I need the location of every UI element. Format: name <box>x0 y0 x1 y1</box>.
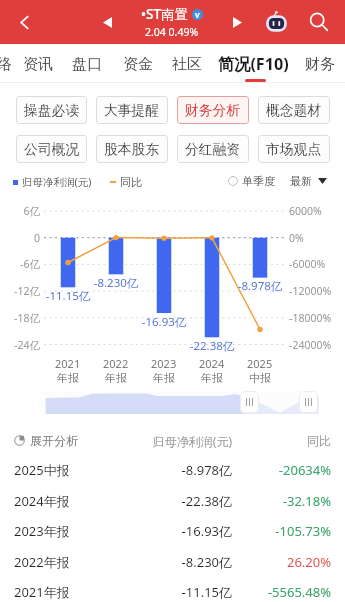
staticText: 财务分析 <box>185 102 241 119</box>
button[interactable]: Range end handle <box>299 391 318 413</box>
button[interactable]: 2024年报 <box>0 489 345 520</box>
staticText: 大事提醒 <box>104 102 160 119</box>
staticText: -22.38亿 <box>182 338 242 354</box>
button[interactable]: 财务 <box>282 44 345 82</box>
staticText: -32.18% <box>231 492 331 510</box>
staticText: 股本股东 <box>104 141 160 158</box>
staticText: 年报 <box>153 371 175 385</box>
staticText: -6000% <box>289 257 345 271</box>
staticText: 分红融资 <box>185 141 241 158</box>
staticText: 年报 <box>105 371 127 385</box>
staticText: 络 <box>0 55 12 74</box>
staticText: 6亿 <box>0 204 40 218</box>
staticText: 2022年报 <box>14 553 70 571</box>
staticText: 2025中报 <box>14 461 70 479</box>
staticText: 归母净利润(元) <box>132 433 232 449</box>
staticText: •ST南置 <box>141 5 189 23</box>
button[interactable]: Previous stock <box>90 0 124 44</box>
button[interactable]: Search <box>304 0 334 44</box>
button[interactable]: 股本股东 <box>96 135 168 163</box>
staticText: 同比 <box>231 433 331 448</box>
staticText: -8.978亿 <box>230 278 290 294</box>
staticText: -8.230亿 <box>132 553 232 571</box>
staticText: 资讯 <box>23 55 53 74</box>
staticText: -12亿 <box>0 284 40 298</box>
button[interactable]: 2025中报 <box>0 458 345 489</box>
staticText: 同比 <box>120 175 142 189</box>
button[interactable]: 2021年报 <box>0 580 345 602</box>
staticText: 2024 <box>199 356 225 371</box>
staticText: -18000% <box>289 311 345 325</box>
staticText: 单季度 <box>242 174 275 188</box>
staticText: 市场观点 <box>266 141 322 158</box>
button[interactable]: 展开分析 <box>14 433 78 448</box>
button[interactable]: 概念题材 <box>258 96 330 124</box>
staticText: v <box>195 9 200 20</box>
staticText: -6亿 <box>0 257 40 271</box>
staticText: -24亿 <box>0 338 40 352</box>
button[interactable]: 资金 <box>100 44 176 82</box>
staticText: 2024年报 <box>14 492 70 510</box>
staticText: 2022 <box>103 356 129 371</box>
staticText: -8.978亿 <box>132 461 232 479</box>
staticText: 26.20% <box>231 553 331 571</box>
staticText: -11.15亿 <box>38 288 98 304</box>
button[interactable]: 财务分析 <box>177 96 249 124</box>
button[interactable]: Range start handle <box>240 391 259 413</box>
button[interactable]: 络 <box>0 44 42 82</box>
button[interactable]: 盘口 <box>49 44 125 82</box>
button[interactable]: Period selector <box>290 174 327 188</box>
staticText: 最新 <box>290 174 312 188</box>
button[interactable]: AI assistant <box>262 0 291 44</box>
button[interactable]: Back <box>6 0 42 44</box>
staticText: -16.93亿 <box>134 314 194 330</box>
staticText: -16.93亿 <box>132 522 232 540</box>
button[interactable]: 2022年报 <box>0 550 345 581</box>
staticText: 年报 <box>201 371 223 385</box>
staticText: 2021 <box>55 356 81 371</box>
staticText: 2.04 0.49% <box>145 25 199 39</box>
staticText: 2023 <box>151 356 177 371</box>
staticText: 归母净利润(元) <box>22 175 92 189</box>
button[interactable]: 社区 <box>149 44 225 82</box>
staticText: -18亿 <box>0 311 40 325</box>
staticText: 0 <box>0 231 40 245</box>
staticText: -5565.48% <box>231 583 331 601</box>
staticText: -24000% <box>289 338 345 352</box>
staticText: 简况(F10) <box>218 53 289 75</box>
staticText: 2021年报 <box>14 583 70 601</box>
staticText: -20634% <box>231 461 331 479</box>
staticText: 2023年报 <box>14 522 70 540</box>
staticText: 资金 <box>123 55 153 74</box>
staticText: -8.230亿 <box>86 275 146 291</box>
button[interactable]: 资讯 <box>0 44 76 82</box>
button[interactable]: 2023年报 <box>0 519 345 550</box>
button[interactable]: 操盘必读 <box>16 96 87 124</box>
button[interactable]: 单季度 <box>228 174 275 188</box>
staticText: 中报 <box>249 371 271 385</box>
staticText: 概念题材 <box>266 102 322 119</box>
staticText: 盘口 <box>72 55 102 74</box>
staticText: 0% <box>289 231 345 245</box>
staticText: -105.73% <box>231 522 331 540</box>
staticText: 年报 <box>57 371 79 385</box>
button[interactable]: 市场观点 <box>258 135 330 163</box>
button[interactable]: 公司概况 <box>16 135 87 163</box>
button[interactable]: 简况(F10) <box>215 44 291 82</box>
staticText: 展开分析 <box>30 433 78 448</box>
staticText: 社区 <box>172 55 202 74</box>
button[interactable]: Next stock <box>220 0 254 44</box>
staticText: -12000% <box>289 284 345 298</box>
staticText: 操盘必读 <box>24 102 80 119</box>
staticText: -11.15亿 <box>132 583 232 601</box>
button[interactable]: 分红融资 <box>177 135 249 163</box>
button[interactable]: 大事提醒 <box>96 96 168 124</box>
staticText: 2025 <box>247 356 273 371</box>
staticText: 财务 <box>305 55 335 74</box>
staticText: -22.38亿 <box>132 492 232 510</box>
staticText: 公司概况 <box>24 141 80 158</box>
staticText: 6000% <box>289 204 345 218</box>
